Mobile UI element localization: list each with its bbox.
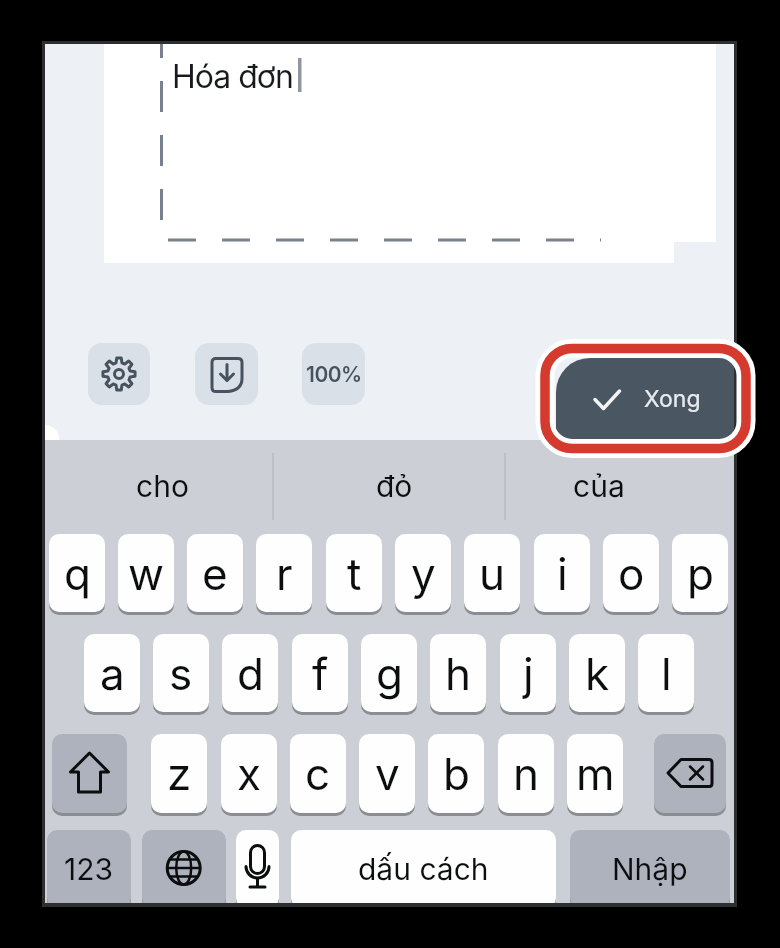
staticText: z [167, 747, 192, 800]
staticText: Xong [644, 385, 701, 413]
staticText: h [445, 647, 472, 700]
staticText: s [169, 647, 193, 700]
staticText: j [523, 647, 534, 700]
staticText: w [128, 547, 165, 600]
staticText: 123 [64, 851, 114, 887]
staticText: f [312, 647, 329, 700]
staticText: v [375, 747, 400, 800]
staticText: l [661, 647, 672, 700]
staticText: của [573, 468, 625, 504]
staticText: c [305, 747, 331, 800]
staticText: o [618, 547, 645, 600]
staticText: Nhập [612, 851, 688, 887]
staticText: i [557, 547, 568, 600]
staticText: u [479, 547, 506, 600]
staticText: a [100, 647, 125, 700]
staticText: Hóa đơn [172, 57, 293, 96]
staticText: x [237, 747, 262, 800]
staticText: đỏ [376, 468, 413, 504]
staticText: k [585, 647, 610, 700]
staticText: p [687, 547, 714, 600]
staticText: d [237, 647, 264, 700]
staticText: m [576, 747, 615, 800]
staticText: q [64, 547, 91, 600]
staticText: e [202, 547, 228, 600]
staticText: cho [136, 468, 189, 504]
staticText: r [276, 547, 293, 600]
staticText: b [443, 747, 470, 800]
staticText: g [376, 647, 403, 700]
staticText: t [347, 547, 362, 600]
staticText: 100% [306, 362, 362, 387]
staticText: dấu cách [358, 851, 489, 887]
staticText: n [513, 747, 539, 800]
staticText: y [411, 547, 436, 600]
